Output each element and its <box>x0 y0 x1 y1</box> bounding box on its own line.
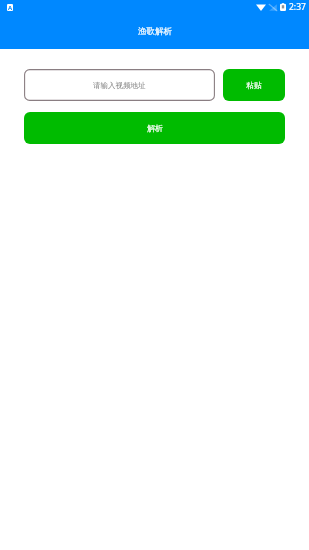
button[interactable]: 粘贴 <box>223 69 285 101</box>
staticText: 2:37 <box>289 1 306 13</box>
button[interactable]: 解析 <box>24 112 285 144</box>
staticText: 请输入视频地址 <box>93 81 146 90</box>
button[interactable]: 请输入视频地址 <box>24 69 215 101</box>
staticText: A <box>8 4 13 11</box>
staticText: 解析 <box>147 123 163 133</box>
staticText: 渔歌解析 <box>138 26 172 37</box>
staticText: 粘贴 <box>246 80 262 90</box>
